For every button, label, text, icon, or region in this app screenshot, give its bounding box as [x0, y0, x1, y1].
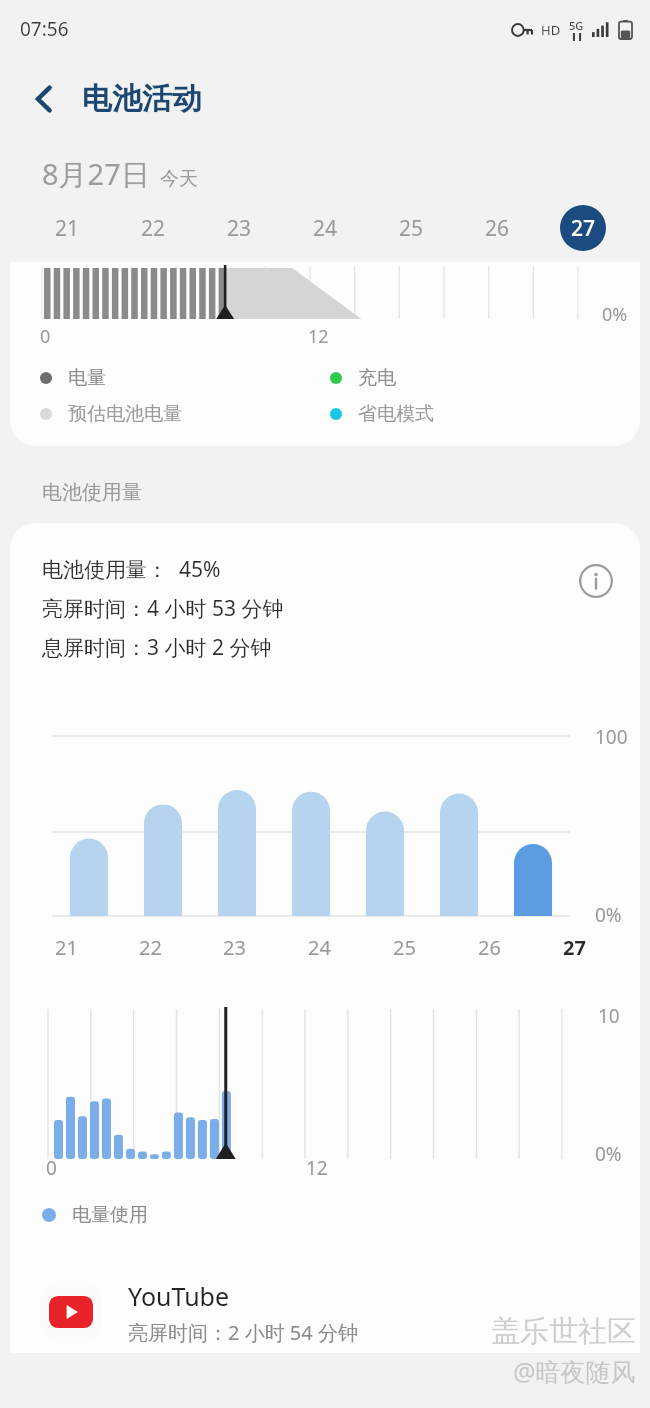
button[interactable]: 24: [282, 203, 368, 253]
staticText: 27: [563, 934, 586, 961]
staticText: 息屏时间：3 小时 2 分钟: [42, 633, 272, 662]
staticText: 预估电池电量: [68, 402, 182, 426]
button[interactable]: 22: [110, 203, 196, 253]
button[interactable]: 21: [24, 203, 110, 253]
staticText: 省电模式: [358, 402, 434, 426]
staticText: 0%: [595, 1141, 622, 1167]
staticText: 0: [40, 324, 51, 349]
staticText: 电池使用量： 45%: [42, 555, 221, 584]
staticText: 电量: [68, 366, 106, 390]
staticText: 盖乐世社区: [491, 1313, 636, 1350]
staticText: 电量使用: [72, 1203, 148, 1227]
staticText: 电池活动: [82, 80, 202, 118]
staticText: 07:56: [20, 16, 69, 42]
staticText: 100: [595, 724, 628, 750]
staticText: 27: [571, 214, 596, 243]
staticText: 22: [141, 214, 166, 243]
staticText: 25: [393, 934, 416, 961]
staticText: @暗夜随风: [513, 1354, 636, 1388]
staticText: YouTube: [128, 1279, 230, 1313]
staticText: 0: [46, 1155, 57, 1181]
staticText: 24: [308, 934, 331, 961]
staticText: 亮屏时间：2 小时 54 分钟: [128, 1319, 358, 1346]
staticText: 0%: [602, 302, 628, 327]
staticText: 8月27日: [42, 154, 150, 194]
staticText: 10: [598, 1003, 620, 1029]
staticText: 26: [485, 214, 510, 243]
button[interactable]: 26: [454, 203, 540, 253]
staticText: 23: [227, 214, 252, 243]
button[interactable]: 25: [368, 203, 454, 253]
button[interactable]: YouTube: [10, 1271, 640, 1353]
button[interactable]: Back: [18, 73, 70, 125]
staticText: 12: [308, 324, 329, 349]
staticText: 5G: [569, 18, 584, 33]
button[interactable]: 23: [196, 203, 282, 253]
staticText: 充电: [358, 366, 396, 390]
staticText: 25: [399, 214, 424, 243]
button[interactable]: 27: [540, 203, 626, 253]
staticText: 21: [55, 934, 78, 961]
staticText: 电池使用量: [42, 480, 142, 505]
staticText: 今天: [160, 167, 198, 191]
button[interactable]: Info: [572, 557, 620, 605]
staticText: 24: [313, 214, 338, 243]
staticText: HD: [541, 21, 561, 39]
staticText: 0%: [595, 902, 622, 928]
staticText: 26: [478, 934, 501, 961]
staticText: 23: [223, 934, 246, 961]
staticText: 21: [55, 214, 80, 243]
staticText: 12: [306, 1155, 328, 1181]
staticText: 亮屏时间：4 小时 53 分钟: [42, 594, 284, 623]
staticText: 22: [139, 934, 162, 961]
